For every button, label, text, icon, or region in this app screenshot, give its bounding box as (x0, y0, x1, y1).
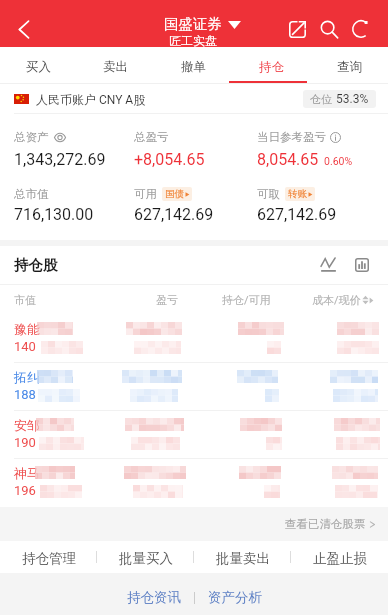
staticText: 查询 (337, 59, 362, 75)
button[interactable]: Search (313, 13, 345, 45)
staticText: 人民币账户 CNY A股 (36, 92, 146, 107)
staticText: 持仓股 (14, 256, 58, 274)
button[interactable]: Share (281, 13, 313, 45)
staticText: 627,142.69 (257, 205, 337, 224)
staticText: 总市值 (14, 187, 49, 201)
button[interactable]: 仓位 (303, 90, 376, 108)
staticText: 可取 (257, 187, 280, 201)
button[interactable]: 持仓管理 (0, 541, 97, 573)
button[interactable]: 国盛证券 (0, 0, 388, 47)
staticText: 豫能 (14, 321, 40, 337)
staticText: 196 (14, 483, 36, 498)
button[interactable]: 止盈止损 (291, 541, 388, 573)
staticText: 匠工实盘 (169, 33, 217, 48)
staticText: 627,142.69 (134, 205, 214, 224)
staticText: 盈亏 (156, 293, 178, 307)
staticText: 140 (14, 339, 36, 354)
staticText: 持仓管理 (22, 550, 76, 567)
staticText: 190 (14, 435, 36, 450)
staticText: 仓位 (310, 92, 332, 106)
staticText: 当日参考盈亏 (257, 130, 326, 144)
staticText: 批量买入 (119, 550, 173, 567)
staticText: 持仓/可用 (222, 293, 271, 307)
staticText: 神马 (14, 465, 40, 481)
staticText: 国盛证券 (164, 15, 222, 33)
button[interactable]: 卖出 (77, 47, 154, 84)
staticText: 批量卖出 (216, 550, 270, 567)
staticText: 8,054.65 (257, 150, 319, 169)
button[interactable]: Bar chart (348, 251, 376, 279)
button[interactable]: 持仓资讯 (114, 581, 194, 614)
staticText: 市值 (14, 293, 36, 307)
staticText: 安邹 (14, 417, 40, 433)
button[interactable]: Refresh (345, 13, 377, 45)
staticText: 止盈止损 (313, 550, 367, 567)
staticText: 拓纠 (14, 369, 40, 385)
staticText: +8,054.65 (134, 150, 205, 169)
button[interactable]: 持仓 (232, 47, 310, 84)
staticText: 持仓资讯 (127, 589, 181, 606)
staticText: 国债 (165, 188, 184, 200)
staticText: 买入 (26, 59, 51, 75)
button[interactable]: 批量卖出 (194, 541, 291, 573)
staticText: 53.3% (336, 92, 369, 106)
staticText: 总资产 (14, 130, 49, 144)
button[interactable]: 安邹 (0, 411, 388, 459)
staticText: 188 (14, 387, 36, 402)
button[interactable]: 资产分析 (195, 581, 275, 614)
staticText: 成本/现价 (312, 293, 361, 307)
staticText: 撤单 (181, 59, 206, 75)
staticText: 1,343,272.69 (14, 150, 106, 169)
staticText: 查看已清仓股票 (285, 517, 366, 531)
button[interactable]: 转账 (285, 187, 315, 201)
button[interactable]: 撤单 (154, 47, 232, 84)
button[interactable]: 查询 (310, 47, 388, 84)
staticText: 总盈亏 (134, 130, 169, 144)
staticText: 转账 (288, 188, 307, 200)
button[interactable]: 国债 (162, 187, 192, 201)
button[interactable]: Back (0, 7, 44, 51)
button[interactable]: 神马 (0, 459, 388, 507)
button[interactable]: 拓纠 (0, 363, 388, 411)
staticText: 持仓 (259, 59, 284, 75)
button[interactable]: 查看已清仓股票 (285, 517, 388, 531)
staticText: 0.60% (324, 155, 353, 167)
staticText: 卖出 (103, 59, 128, 75)
staticText: 716,130.00 (14, 205, 94, 224)
button[interactable]: 批量买入 (97, 541, 194, 573)
staticText: 资产分析 (208, 589, 262, 606)
button[interactable]: 豫能 (0, 315, 388, 363)
button[interactable]: 成本/现价 (312, 293, 374, 307)
staticText: 可用 (134, 187, 157, 201)
button[interactable]: 买入 (0, 47, 77, 84)
button[interactable]: Trend chart (314, 251, 342, 279)
